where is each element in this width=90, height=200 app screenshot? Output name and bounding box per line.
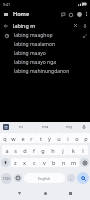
staticText: j [62,147,64,154]
button[interactable]: g [38,145,48,155]
staticText: x [23,159,26,166]
staticText: d [23,147,27,154]
staticText: v [43,159,46,166]
staticText: s [14,147,17,154]
staticText: English [38,176,51,181]
staticText: labing maaghop [14,32,53,39]
button[interactable]: Recent apps [64,187,77,200]
button[interactable]: x [20,158,29,167]
button[interactable]: c [29,158,39,167]
button[interactable]: m [69,158,79,167]
button[interactable]: e [18,133,27,143]
staticText: 9:41 [3,2,11,7]
staticText: g [41,147,45,154]
staticText: u [57,135,61,142]
button[interactable]: o [72,133,81,143]
button[interactable]: labing maayo nga [0,58,90,67]
staticText: r [30,135,33,142]
staticText: labing maalamon [14,41,56,48]
button[interactable]: l [78,145,88,155]
button[interactable]: Home [39,187,52,200]
staticText: l [82,147,84,154]
staticText: n [62,159,66,166]
staticText: a [5,147,9,154]
button[interactable]: my [57,122,81,132]
staticText: . [70,175,72,182]
staticText: m [19,124,23,130]
button[interactable]: t [36,133,45,143]
button[interactable]: r [27,133,36,143]
staticText: labing m [13,22,36,29]
button[interactable]: Back [1,21,11,31]
button[interactable]: Insert suggestion [80,31,89,40]
staticText: c [33,159,36,166]
button[interactable]: Shift [0,156,11,169]
button[interactable]: v [39,158,49,167]
staticText: ?123 [3,177,10,181]
button[interactable]: a [2,145,11,155]
button[interactable]: Back [0,20,90,31]
button[interactable]: z [11,158,20,167]
button[interactable]: i [63,133,72,143]
staticText: p [84,135,88,142]
staticText: labing maayo [14,50,46,57]
button[interactable]: q [0,133,9,143]
button[interactable]: n [59,158,69,167]
button[interactable]: Cast [59,11,66,18]
button[interactable]: Search [77,172,89,184]
button[interactable]: ma [33,122,57,132]
button[interactable]: labing maalamon [0,40,90,49]
button[interactable]: d [20,145,29,155]
button[interactable]: English [24,173,65,183]
staticText: Home [13,10,30,18]
button[interactable]: More options [83,11,89,17]
staticText: m [71,159,77,166]
button[interactable]: y [45,133,54,143]
button[interactable]: s [11,145,20,155]
button[interactable]: u [54,133,63,143]
staticText: k [72,147,75,154]
button[interactable]: j [58,145,68,155]
button[interactable]: p [81,133,90,143]
button[interactable]: h [48,145,58,155]
button[interactable]: labing maayo [0,49,90,58]
staticText: o [75,135,79,142]
button[interactable]: labing maaghop [0,31,90,40]
button[interactable]: Navigation menu [1,9,11,19]
button[interactable]: Voice search [80,21,89,30]
button[interactable]: Back [13,187,26,200]
button[interactable]: Account [75,10,83,18]
button[interactable]: f [29,145,38,155]
button[interactable]: Symbols [1,173,12,184]
button[interactable]: Emoji [14,174,22,182]
staticText: i [67,135,69,142]
staticText: my [66,124,73,130]
button[interactable]: Period [67,174,75,182]
staticText: e [21,135,25,142]
button[interactable]: m [9,122,33,132]
button[interactable]: w [9,133,18,143]
button[interactable]: Backspace [79,156,90,169]
button[interactable]: Clear query [71,21,80,30]
staticText: t [40,135,42,142]
staticText: w [11,135,16,142]
staticText: labing maayo nga [14,59,57,66]
staticText: labing mahinungdanon [14,68,70,75]
button[interactable]: labing mahinungdanon [0,67,90,76]
staticText: q [3,135,7,142]
staticText: b [52,159,56,166]
staticText: ma [42,124,49,130]
staticText: h [51,147,55,154]
staticText: z [14,159,17,166]
button[interactable]: k [68,145,78,155]
button[interactable]: Voice input [81,124,87,130]
button[interactable]: b [49,158,59,167]
staticText: y [48,135,51,142]
staticText: f [33,147,35,154]
button[interactable]: Gboard settings [3,124,9,130]
button[interactable]: Notifications [67,11,74,18]
